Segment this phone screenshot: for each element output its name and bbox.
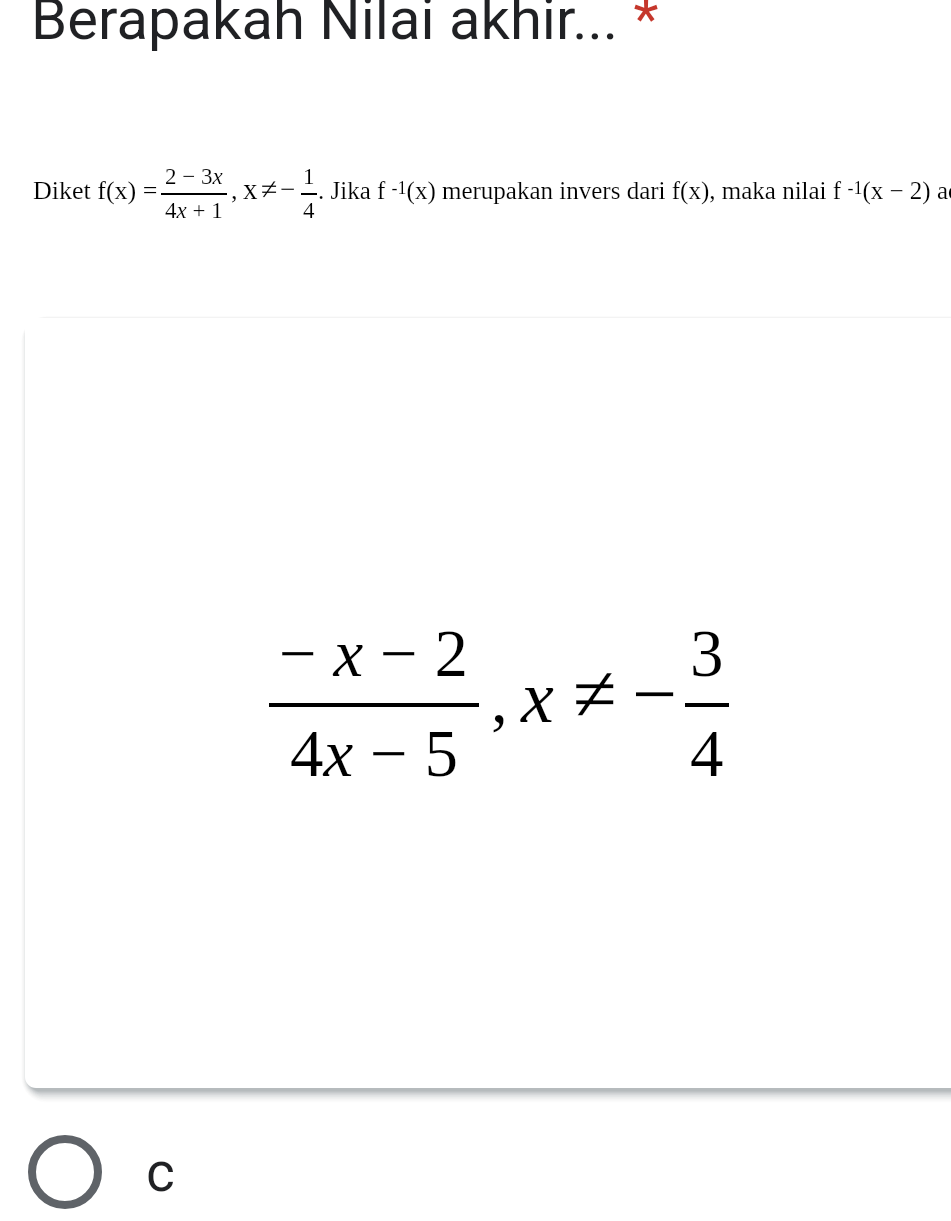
- staticText: x: [521, 656, 554, 738]
- staticText: x: [243, 173, 258, 205]
- staticText: 4: [690, 716, 724, 790]
- staticText: Berapakah Nilai akhir...: [31, 0, 619, 53]
- staticText: *: [619, 0, 659, 53]
- staticText: 3: [690, 616, 724, 690]
- staticText: Diket f(x) =: [33, 176, 158, 205]
- staticText: ≠: [261, 172, 278, 205]
- staticText: −: [280, 174, 296, 204]
- other: Option c: [28, 1135, 102, 1209]
- staticText: ≠: [573, 650, 617, 739]
- staticText: ,: [491, 662, 508, 736]
- staticText: − x − 2: [279, 616, 469, 690]
- staticText: −: [632, 650, 678, 739]
- staticText: 1: [303, 164, 315, 189]
- staticText: ,: [231, 176, 238, 205]
- staticText: 2 − 3x: [165, 164, 223, 189]
- staticText: 4x − 5: [290, 716, 459, 790]
- button[interactable]: − x − 2: [25, 318, 951, 1088]
- staticText: 4x + 1: [165, 198, 223, 223]
- button[interactable]: Option c: [0, 1119, 951, 1221]
- staticText: 4: [303, 198, 315, 223]
- staticText: . Jika f -1(x) merupakan invers dari f(x…: [318, 177, 951, 205]
- staticText: c: [146, 1140, 175, 1204]
